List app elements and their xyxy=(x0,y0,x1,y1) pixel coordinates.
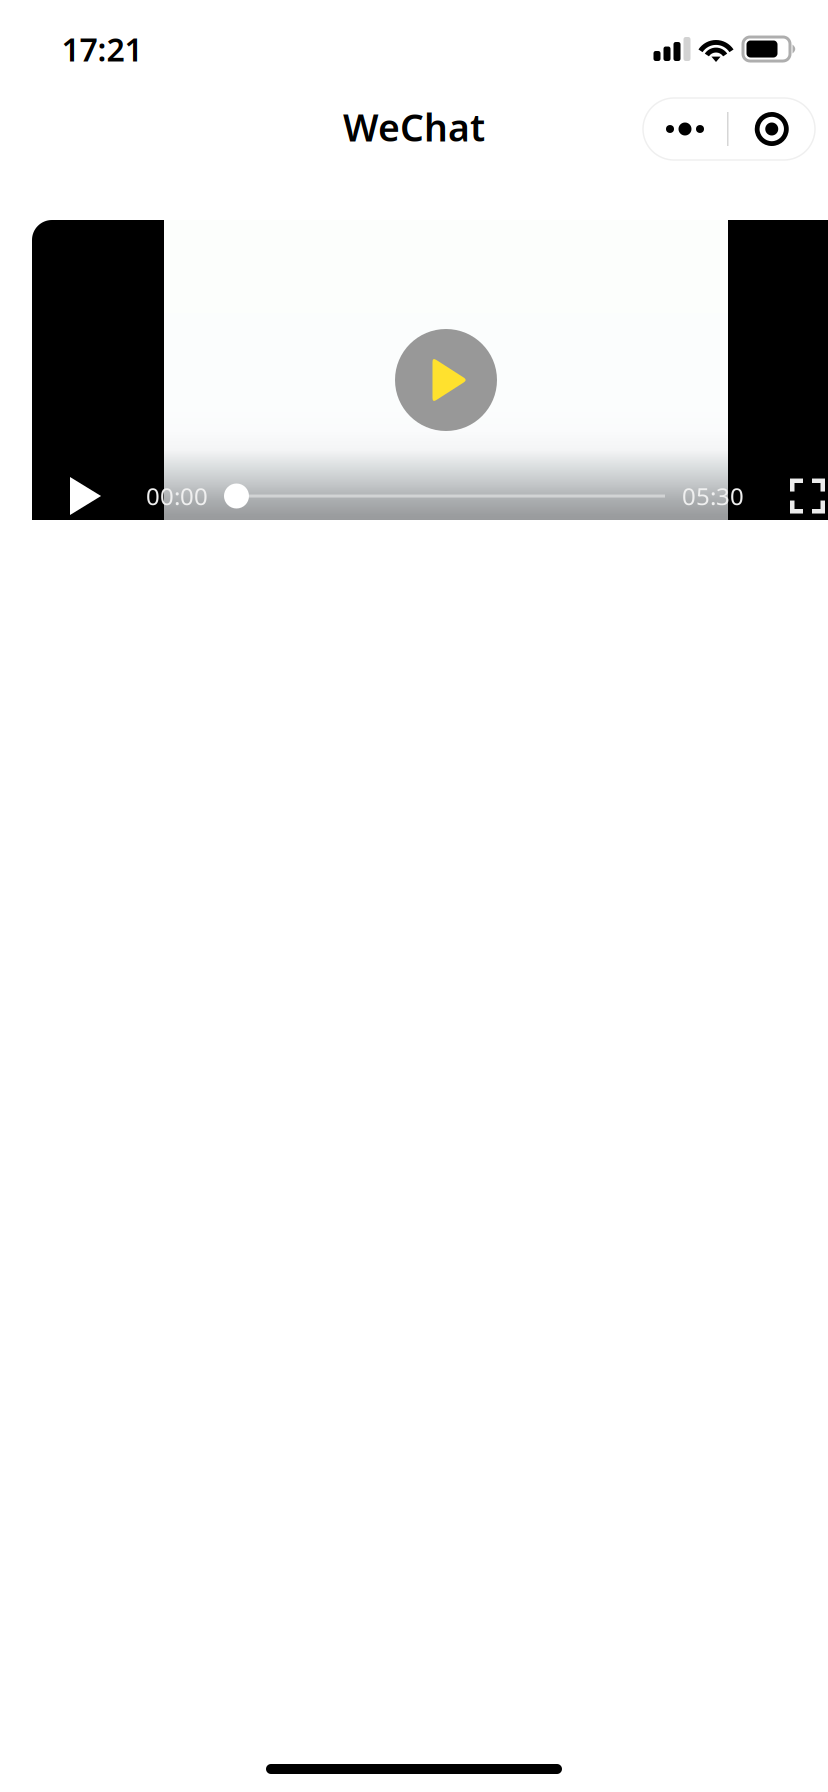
staticText: WeChat xyxy=(343,102,485,152)
button[interactable]: More xyxy=(643,98,727,160)
button[interactable]: Play video xyxy=(395,329,497,431)
button[interactable]: Full screen xyxy=(746,472,828,520)
button[interactable]: Close mini program xyxy=(728,98,815,160)
staticText: 17:21 xyxy=(61,28,142,70)
button[interactable]: Play xyxy=(32,472,139,520)
staticText: 05:30 xyxy=(682,480,744,512)
staticText: 00:00 xyxy=(146,480,208,512)
